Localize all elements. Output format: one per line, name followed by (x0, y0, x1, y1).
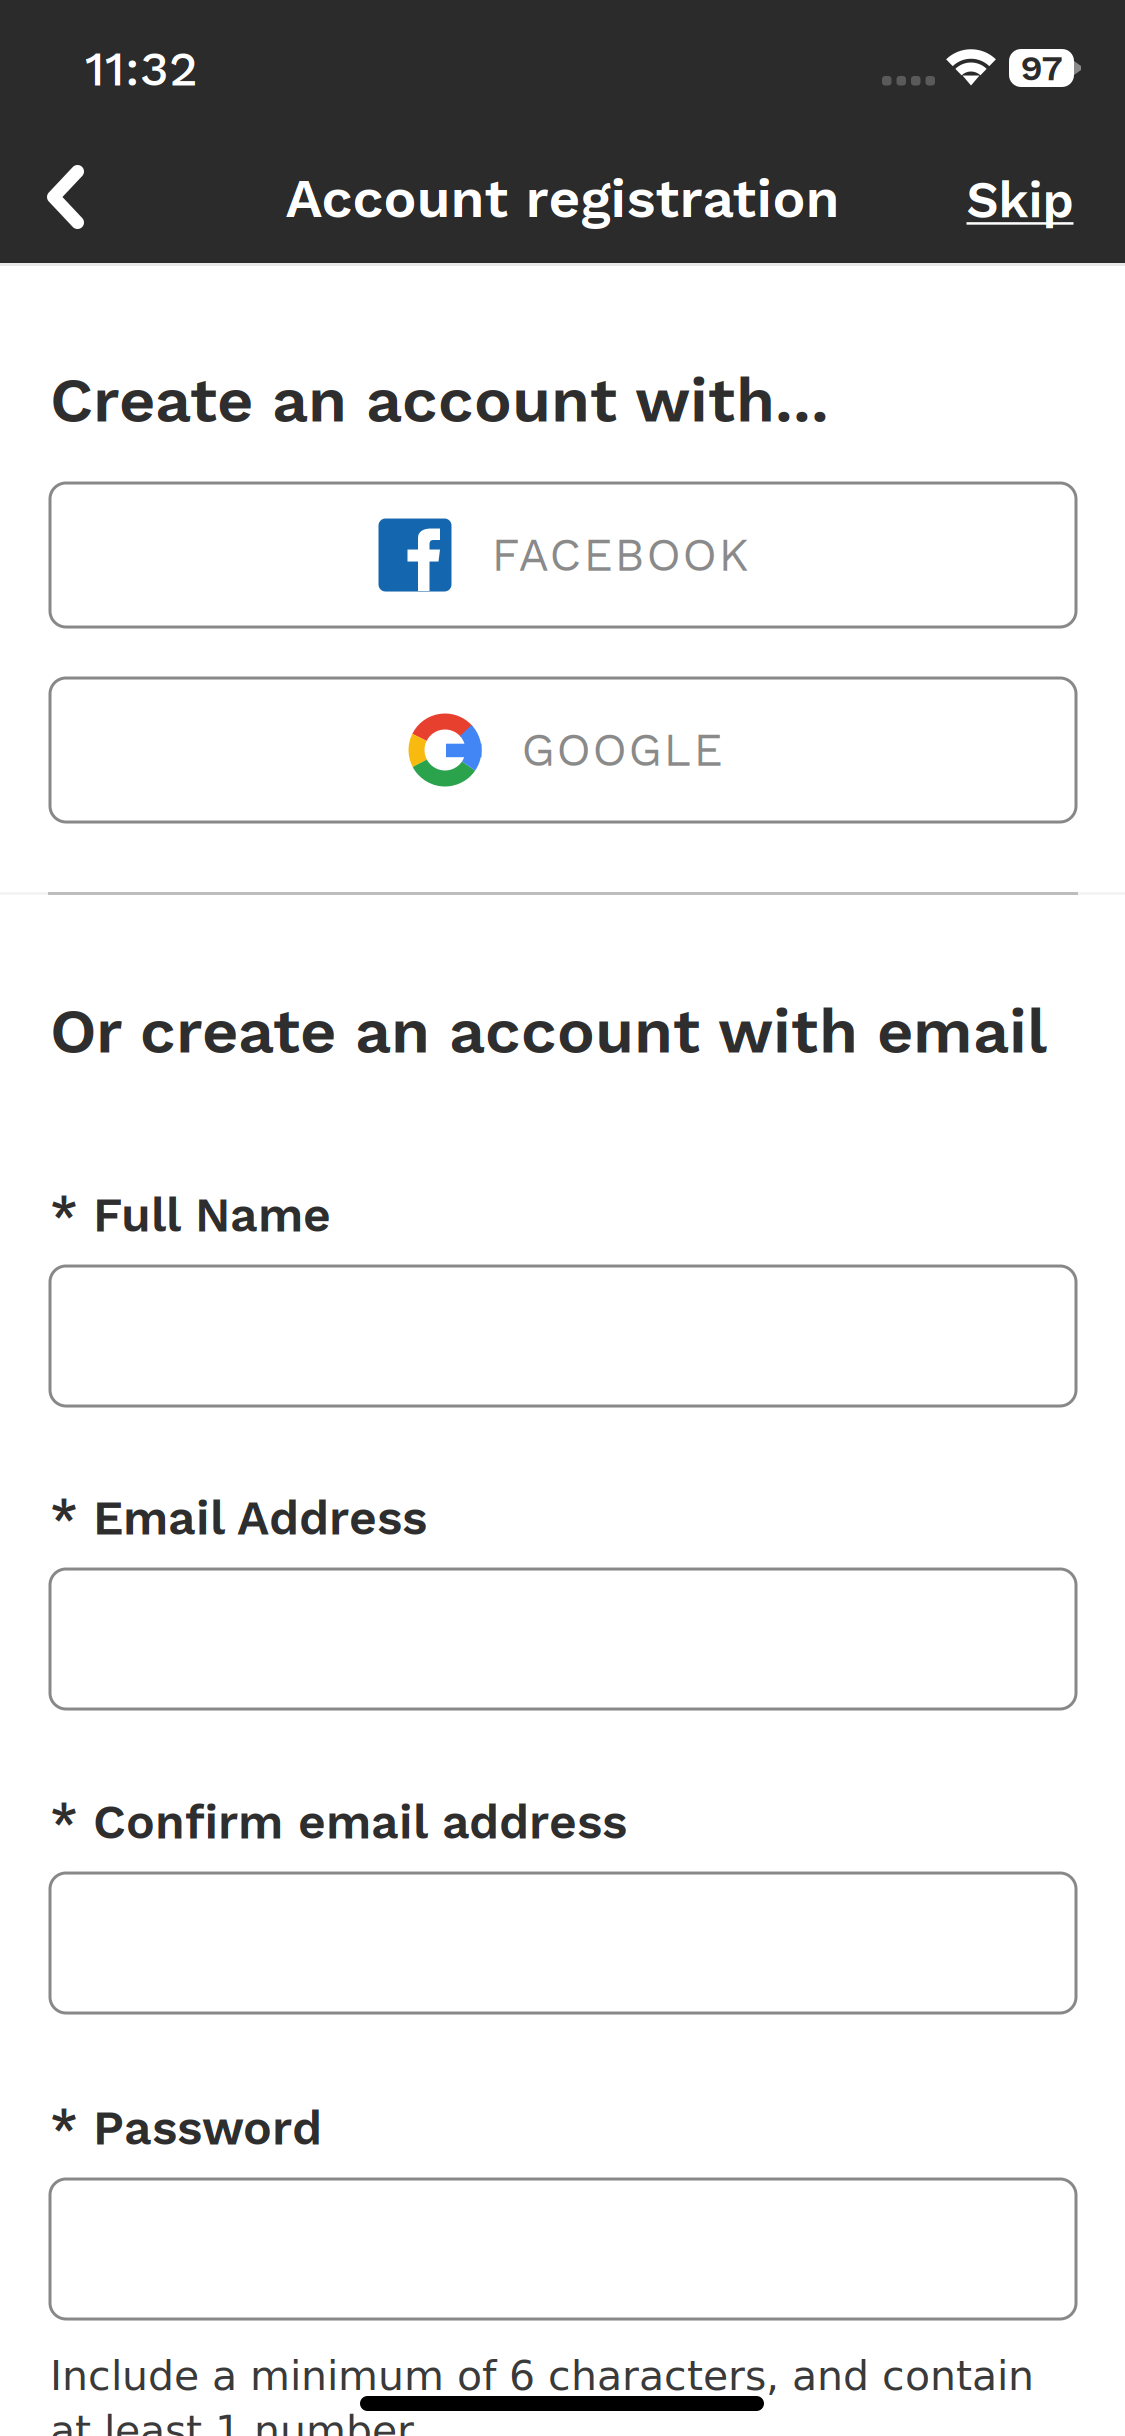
button[interactable]: * Confirm email address (50, 1873, 1076, 2013)
staticText: GOOGLE (521, 723, 722, 777)
staticText: * Password (50, 2100, 322, 2156)
button[interactable]: GOOGLE (50, 678, 1076, 822)
staticText: * Full Name (50, 1187, 331, 1243)
staticText: FACEBOOK (491, 528, 748, 582)
staticText: Or create an account with email (50, 994, 1047, 1068)
staticText: Include a minimum of 6 characters, and c… (50, 2352, 1034, 2436)
staticText: Skip (966, 171, 1073, 229)
staticText: 97 (1020, 47, 1062, 89)
button[interactable]: * Email Address (50, 1569, 1076, 1709)
staticText: Create an account with... (50, 363, 829, 437)
button[interactable]: FACEBOOK (50, 483, 1076, 627)
button[interactable]: Skip (0, 0, 1125, 2436)
button[interactable]: * Full Name (50, 1266, 1076, 1406)
staticText: Account registration (285, 166, 839, 230)
staticText: 11:32 (85, 40, 198, 97)
staticText: * Confirm email address (50, 1794, 627, 1850)
button[interactable]: * Password (50, 2179, 1076, 2319)
button[interactable]: Back (0, 0, 1125, 2436)
staticText: * Email Address (50, 1490, 427, 1546)
